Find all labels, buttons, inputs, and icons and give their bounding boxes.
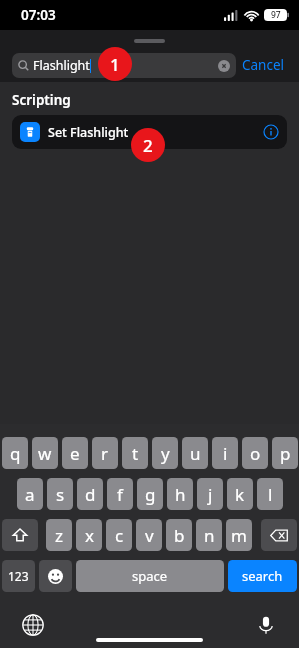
staticText: t — [132, 442, 139, 465]
staticText: v — [145, 524, 154, 547]
button[interactable]: m — [226, 519, 252, 551]
staticText: 1 — [110, 53, 120, 76]
button[interactable]: space — [76, 560, 224, 592]
staticText: u — [190, 442, 201, 465]
button[interactable]: d — [77, 478, 103, 510]
button[interactable]: i — [212, 437, 238, 469]
staticText: z — [55, 524, 63, 547]
staticText: y — [161, 442, 170, 465]
button[interactable]: e — [62, 437, 88, 469]
button[interactable]: p — [272, 437, 298, 469]
button[interactable]: b — [166, 519, 192, 551]
staticText: o — [250, 442, 261, 465]
button[interactable]: g — [137, 478, 163, 510]
staticText: m — [231, 524, 247, 547]
button[interactable]: r — [92, 437, 118, 469]
button[interactable]: Backspace — [261, 519, 297, 551]
staticText: 123 — [8, 568, 29, 584]
staticText: Cancel — [242, 56, 285, 74]
button[interactable]: o — [242, 437, 268, 469]
button[interactable]: Set Flashlight — [12, 115, 287, 149]
button[interactable]: Change keyboard language — [22, 614, 44, 636]
staticText: h — [175, 483, 186, 506]
staticText: 97 — [271, 9, 281, 21]
button[interactable]: v — [136, 519, 162, 551]
button[interactable]: a — [17, 478, 43, 510]
button[interactable]: u — [182, 437, 208, 469]
button[interactable]: search — [228, 560, 297, 592]
button[interactable]: t — [122, 437, 148, 469]
button[interactable]: Flashlight — [12, 53, 236, 78]
staticText: g — [145, 483, 156, 506]
staticText: k — [235, 483, 245, 506]
button[interactable]: Info — [263, 124, 279, 140]
button[interactable]: h — [167, 478, 193, 510]
button[interactable]: c — [106, 519, 132, 551]
button[interactable]: z — [46, 519, 72, 551]
button[interactable]: Clear search — [218, 60, 230, 72]
staticText: e — [70, 442, 80, 465]
button[interactable]: f — [107, 478, 133, 510]
button[interactable]: n — [196, 519, 222, 551]
staticText: Scripting — [12, 91, 71, 109]
button[interactable]: s — [47, 478, 73, 510]
staticText: w — [38, 442, 52, 465]
staticText: space — [132, 567, 168, 585]
button[interactable]: j — [197, 478, 223, 510]
staticText: Flashlight — [33, 57, 90, 74]
button[interactable]: Shift — [2, 519, 38, 551]
button[interactable]: Cancel — [236, 52, 291, 78]
staticText: f — [117, 483, 123, 506]
button[interactable]: Dictate — [255, 614, 277, 636]
button[interactable]: x — [76, 519, 102, 551]
staticText: search — [242, 567, 283, 585]
staticText: p — [280, 442, 291, 465]
button[interactable]: l — [257, 478, 283, 510]
staticText: b — [174, 524, 185, 547]
staticText: r — [101, 442, 109, 465]
staticText: a — [25, 483, 35, 506]
staticText: d — [85, 483, 96, 506]
button[interactable]: 123 — [2, 560, 35, 592]
button[interactable]: q — [2, 437, 28, 469]
staticText: Set Flashlight — [48, 124, 129, 141]
staticText: x — [85, 524, 94, 547]
staticText: l — [268, 483, 273, 506]
staticText: 07:03 — [21, 6, 56, 24]
staticText: n — [204, 524, 215, 547]
staticText: q — [10, 442, 21, 465]
staticText: 2 — [143, 134, 153, 157]
staticText: j — [208, 483, 213, 506]
button[interactable]: w — [32, 437, 58, 469]
staticText: c — [115, 524, 124, 547]
staticText: s — [56, 483, 65, 506]
staticText: i — [223, 442, 228, 465]
button[interactable]: k — [227, 478, 253, 510]
button[interactable]: Emoji — [39, 560, 72, 592]
button[interactable]: y — [152, 437, 178, 469]
